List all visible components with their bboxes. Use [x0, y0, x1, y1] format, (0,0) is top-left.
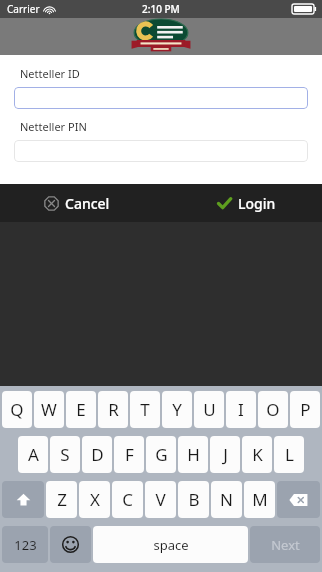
- button[interactable]: G: [146, 436, 176, 473]
- staticText: B: [188, 488, 200, 511]
- staticText: 123: [14, 536, 37, 554]
- staticText: P: [300, 398, 311, 421]
- staticText: Carrier: [7, 2, 40, 16]
- staticText: U: [203, 398, 216, 421]
- button[interactable]: U: [194, 391, 224, 428]
- button[interactable]: [14, 140, 308, 162]
- button[interactable]: D: [82, 436, 112, 473]
- staticText: Netteller ID: [20, 66, 80, 81]
- staticText: Netteller PIN: [20, 119, 87, 134]
- staticText: A: [28, 443, 39, 466]
- staticText: J: [223, 443, 228, 466]
- staticText: C: [122, 488, 133, 511]
- staticText: Y: [172, 398, 182, 421]
- button[interactable]: R: [98, 391, 128, 428]
- button[interactable]: T: [130, 391, 160, 428]
- staticText: H: [187, 443, 200, 466]
- button[interactable]: H: [178, 436, 208, 473]
- button[interactable]: 123: [2, 526, 48, 563]
- button[interactable]: Backspace: [277, 481, 320, 518]
- staticText: space: [153, 536, 189, 554]
- button[interactable]: Shift: [2, 481, 44, 518]
- staticText: F: [125, 443, 134, 466]
- staticText: L: [285, 443, 294, 466]
- button[interactable]: Cancel: [44, 194, 110, 213]
- button[interactable]: V: [145, 481, 176, 518]
- staticText: 2:10 PM: [142, 2, 180, 16]
- button[interactable]: [14, 87, 308, 109]
- staticText: X: [90, 488, 100, 511]
- button[interactable]: P: [290, 391, 320, 428]
- button[interactable]: Next: [250, 526, 320, 563]
- staticText: W: [41, 398, 57, 421]
- button[interactable]: Emoji: [50, 526, 91, 563]
- button[interactable]: W: [34, 391, 64, 428]
- staticText: Cancel: [65, 194, 110, 213]
- staticText: T: [140, 398, 150, 421]
- button[interactable]: Login: [217, 194, 276, 213]
- button[interactable]: L: [274, 436, 304, 473]
- button[interactable]: X: [79, 481, 110, 518]
- button[interactable]: M: [244, 481, 275, 518]
- button[interactable]: J: [210, 436, 240, 473]
- staticText: S: [60, 443, 70, 466]
- button[interactable]: A: [18, 436, 48, 473]
- staticText: Z: [57, 488, 67, 511]
- button[interactable]: I: [226, 391, 256, 428]
- staticText: N: [220, 488, 233, 511]
- staticText: Login: [238, 194, 276, 213]
- staticText: Next: [271, 536, 300, 554]
- staticText: O: [266, 398, 280, 421]
- button[interactable]: C: [112, 481, 143, 518]
- staticText: R: [108, 398, 119, 421]
- staticText: G: [155, 443, 168, 466]
- button[interactable]: B: [178, 481, 209, 518]
- staticText: V: [155, 488, 166, 511]
- button[interactable]: Z: [46, 481, 77, 518]
- staticText: E: [76, 398, 86, 421]
- button[interactable]: O: [258, 391, 288, 428]
- button[interactable]: Y: [162, 391, 192, 428]
- button[interactable]: K: [242, 436, 272, 473]
- button[interactable]: S: [50, 436, 80, 473]
- staticText: K: [252, 443, 263, 466]
- button[interactable]: N: [211, 481, 242, 518]
- staticText: Q: [10, 398, 24, 421]
- staticText: I: [238, 398, 244, 421]
- staticText: M: [252, 488, 268, 511]
- button[interactable]: space: [93, 526, 248, 563]
- button[interactable]: F: [114, 436, 144, 473]
- button[interactable]: E: [66, 391, 96, 428]
- button[interactable]: Q: [2, 391, 32, 428]
- staticText: D: [91, 443, 104, 466]
